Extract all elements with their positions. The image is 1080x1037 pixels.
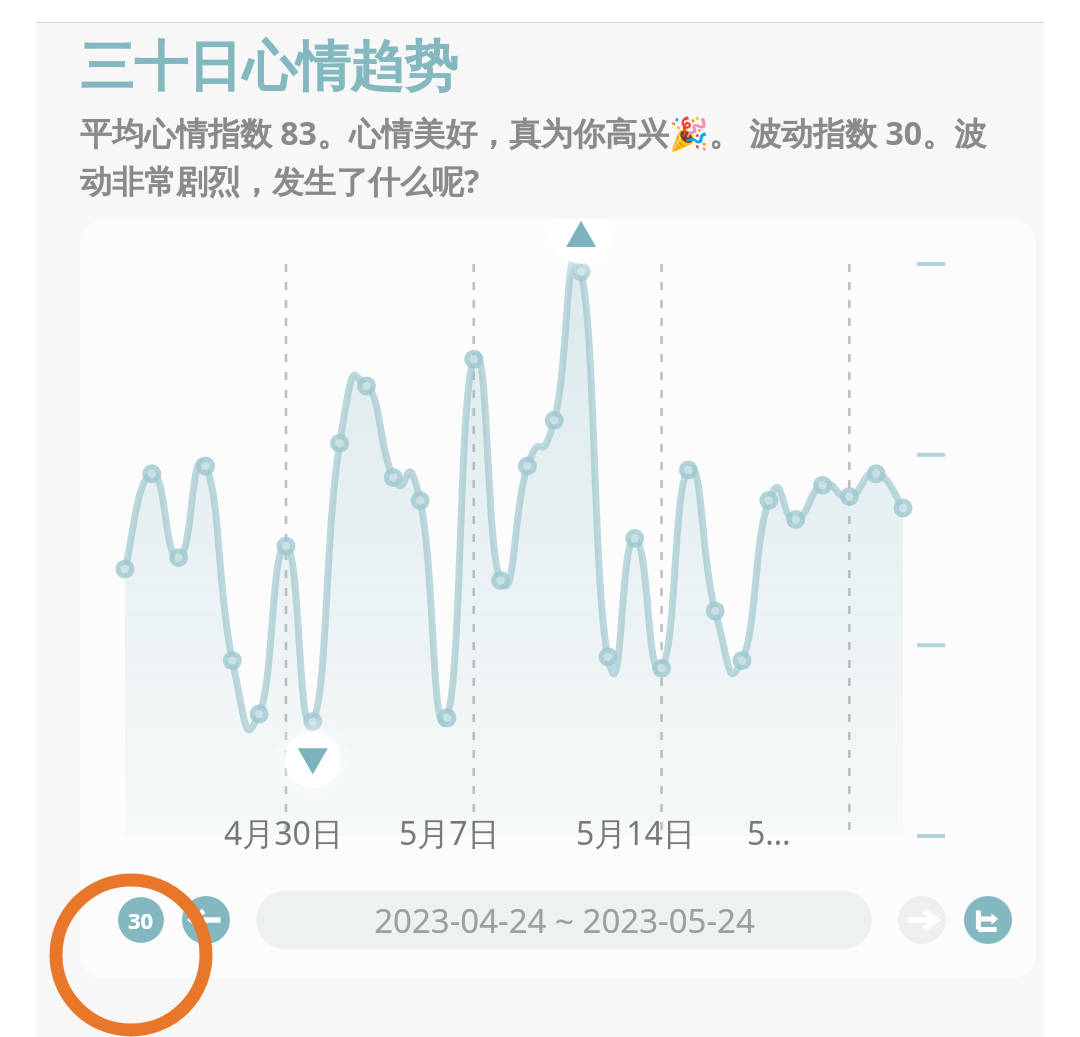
button[interactable]: 30 [118, 897, 164, 943]
staticText: 5… [747, 811, 791, 855]
button[interactable]: Next period [898, 896, 946, 944]
staticText: 30 [128, 905, 154, 935]
staticText: 三十日心情趋势 [80, 33, 458, 101]
button[interactable]: Previous period [182, 896, 230, 944]
staticText: 4月30日 [224, 811, 343, 855]
staticText: 5月7日 [399, 811, 500, 855]
staticText: 平均心情指数 83。心情美好，真为你高兴🎉。 波动指数 30。波动非常剧烈，发生… [80, 111, 1008, 203]
staticText: 2023-04-24 ~ 2023-05-24 [374, 898, 755, 943]
staticText: 5月14日 [576, 811, 695, 855]
button[interactable]: 2023-04-24 ~ 2023-05-24 [256, 891, 872, 949]
button[interactable]: Export [964, 896, 1012, 944]
